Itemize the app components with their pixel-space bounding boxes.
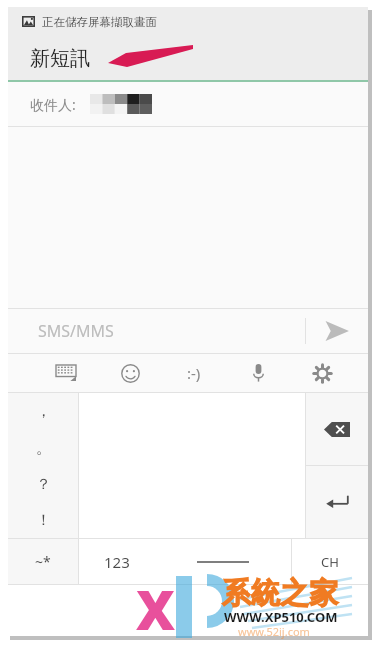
button[interactable]: Send	[306, 309, 368, 353]
staticText: 正在儲存屏幕擷取畫面	[42, 15, 157, 29]
button[interactable]: Emoji	[98, 354, 162, 392]
button[interactable]: 123	[79, 539, 154, 584]
staticText: 。	[36, 439, 51, 458]
staticText: 新短訊	[30, 46, 90, 71]
staticText: 系統之家	[222, 575, 338, 612]
staticText: ，	[36, 402, 51, 421]
button[interactable]: 收件人:	[8, 82, 368, 126]
staticText: 收件人:	[30, 95, 76, 114]
staticText: ？	[36, 475, 51, 494]
staticText: CH	[321, 553, 339, 571]
button[interactable]: SMS/MMS	[8, 309, 305, 353]
staticText: WWW.XP510.COM	[224, 608, 338, 626]
button[interactable]: ~*	[8, 539, 78, 584]
staticText: 123	[104, 552, 130, 572]
button[interactable]: Emoticons	[162, 354, 226, 392]
button[interactable]: CH	[292, 539, 368, 584]
button[interactable]: Backspace	[306, 393, 368, 465]
staticText: :-)	[187, 363, 201, 383]
staticText: ~*	[35, 552, 51, 571]
button[interactable]: Space	[154, 539, 291, 584]
button[interactable]: Keyboard	[34, 354, 98, 392]
staticText: X	[136, 572, 176, 646]
button[interactable]: ，	[8, 393, 78, 538]
button[interactable]: Enter	[306, 466, 368, 538]
staticText: www.52ij.com	[238, 624, 310, 639]
button[interactable]: Settings	[290, 354, 354, 392]
staticText: SMS/MMS	[38, 320, 114, 342]
button[interactable]: Voice input	[226, 354, 290, 392]
staticText: ！	[36, 511, 51, 530]
